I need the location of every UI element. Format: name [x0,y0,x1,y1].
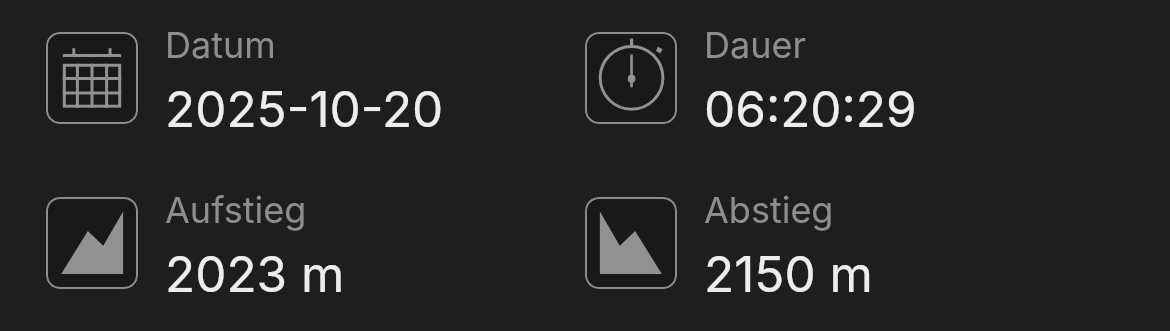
button[interactable]: Dauer [585,32,1124,124]
staticText: 2150 m [704,244,873,304]
other: Dauer [585,32,677,124]
button[interactable]: Abstieg [585,197,1124,289]
button[interactable]: Aufstieg [46,197,585,289]
staticText: Dauer [704,23,807,67]
staticText: 2025-10-20 [165,79,444,139]
staticText: 06:20:29 [704,79,917,139]
staticText: Datum [165,23,276,67]
other: Datum [46,32,138,124]
other: Aufstieg [46,197,138,289]
button[interactable]: Datum [46,32,585,124]
staticText: Abstieg [704,188,834,232]
other: Abstieg [585,197,677,289]
staticText: Aufstieg [165,188,307,232]
staticText: 2023 m [165,244,345,304]
